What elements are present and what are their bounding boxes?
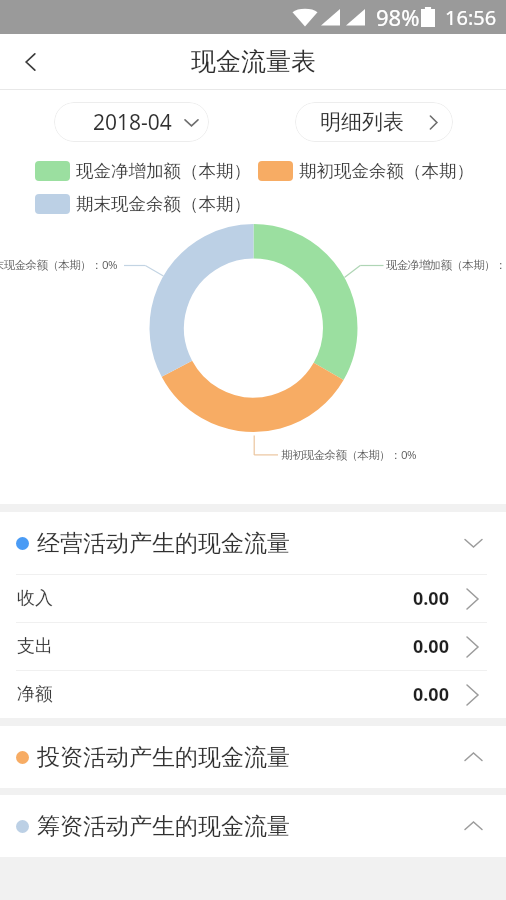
staticText: 收入 (17, 587, 53, 610)
staticText: 投资活动产生的现金流量 (37, 743, 290, 772)
staticText: 2018-04 (93, 108, 172, 137)
staticText: 现金流量表 (191, 46, 316, 77)
staticText: 期初现金余额（本期）：0% (281, 447, 416, 463)
button[interactable]: Back (8, 39, 54, 85)
staticText: 明细列表 (320, 109, 404, 135)
button[interactable]: 2018-04 (54, 102, 209, 142)
staticText: 经营活动产生的现金流量 (37, 529, 290, 558)
staticText: 现金净增加额（本期） (76, 160, 251, 182)
button[interactable]: 收入 (0, 575, 506, 622)
staticText: 16:56 (445, 4, 497, 31)
staticText: 期初现金余额（本期） (299, 160, 474, 182)
staticText: 0.00 (413, 634, 449, 659)
staticText: 98% (376, 2, 420, 32)
staticText: 支出 (17, 635, 53, 658)
staticText: 0.00 (413, 586, 449, 611)
button[interactable]: 净额 (0, 671, 506, 718)
staticText: 0.00 (413, 682, 449, 707)
staticText: 净额 (17, 683, 53, 706)
button[interactable]: 经营活动产生的现金流量 (0, 512, 506, 574)
staticText: 现金净增加额（本期）：0% (386, 257, 506, 273)
staticText: 期末现金余额（本期）：0% (0, 257, 117, 273)
button[interactable]: 明细列表 (295, 102, 453, 142)
staticText: 筹资活动产生的现金流量 (37, 812, 290, 841)
button[interactable]: 支出 (0, 623, 506, 670)
button[interactable]: 投资活动产生的现金流量 (0, 726, 506, 788)
button[interactable]: 筹资活动产生的现金流量 (0, 795, 506, 857)
staticText: 期末现金余额（本期） (76, 193, 251, 215)
